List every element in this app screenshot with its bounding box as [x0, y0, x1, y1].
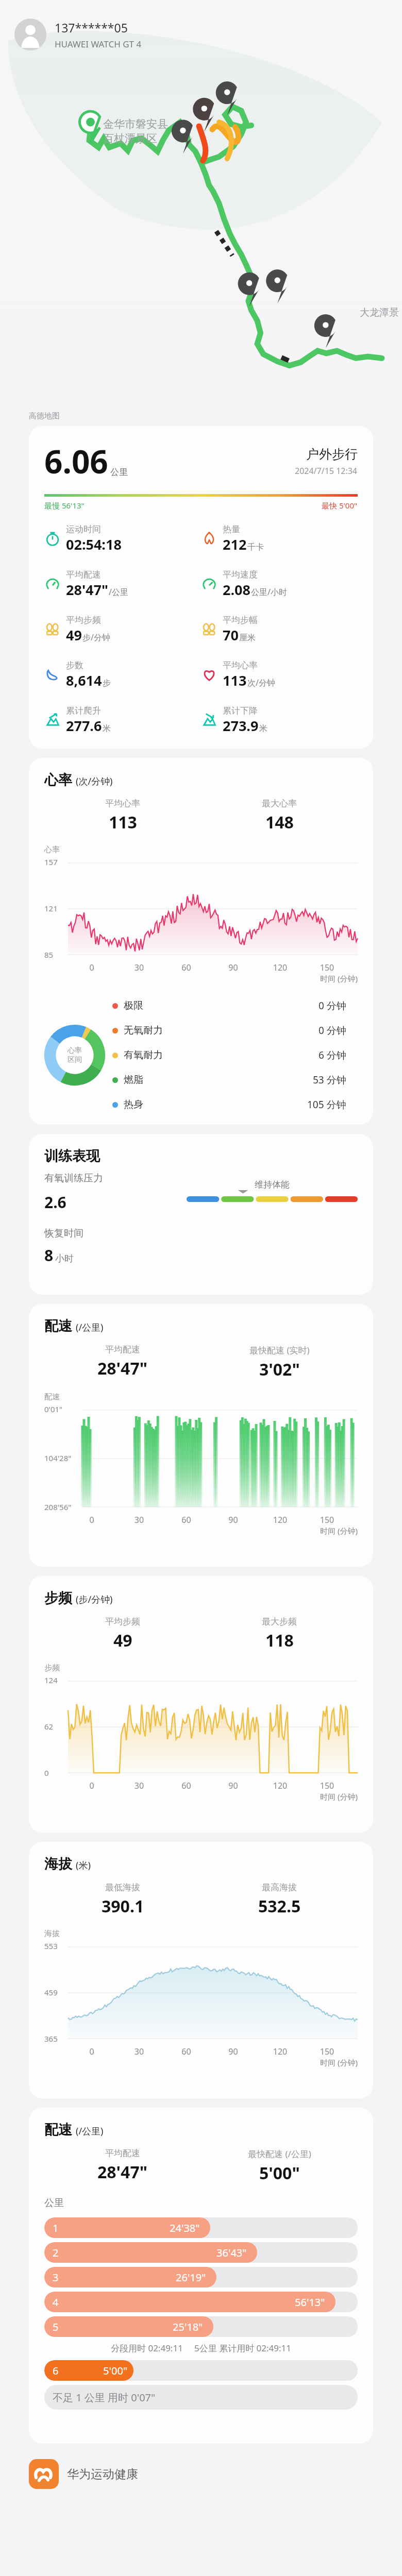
staticText: 厘米: [239, 633, 256, 643]
staticText: 60: [163, 1780, 210, 1791]
staticText: 平均配速: [66, 569, 101, 580]
staticText: 1: [53, 2221, 59, 2235]
staticText: 25'18": [173, 2320, 203, 2334]
staticText: 米: [103, 723, 111, 734]
staticText: 28'47": [66, 580, 108, 599]
staticText: (/公里): [76, 2125, 104, 2138]
staticText: 120: [257, 1780, 304, 1791]
button[interactable]: 4: [44, 2292, 358, 2312]
staticText: 平均心率: [223, 660, 258, 671]
staticText: 步: [103, 678, 111, 688]
staticText: 02:54:18: [66, 535, 122, 554]
staticText: 90: [210, 2046, 257, 2057]
staticText: 26'19": [176, 2270, 206, 2284]
staticText: 90: [210, 962, 257, 973]
staticText: 532.5: [258, 1895, 301, 1918]
staticText: 2024/7/15 12:34: [295, 465, 358, 477]
staticText: 0: [44, 1768, 49, 1778]
staticText: 5'00": [259, 2162, 300, 2184]
staticText: 燃脂: [124, 1074, 143, 1086]
staticText: 390.1: [102, 1895, 144, 1918]
staticText: 热身: [124, 1098, 143, 1111]
staticText: 0: [68, 1780, 115, 1791]
staticText: 最高海拔: [262, 1882, 297, 1893]
staticText: 5'00": [103, 2364, 127, 2378]
staticText: 配速: [44, 2121, 72, 2139]
staticText: 90: [210, 1780, 257, 1791]
staticText: /公里: [109, 586, 128, 598]
staticText: 平均配速: [105, 1344, 140, 1355]
staticText: 0 分钟: [319, 999, 346, 1012]
staticText: 113: [223, 671, 247, 690]
staticText: 70: [223, 625, 239, 645]
staticText: 步频: [44, 1589, 72, 1607]
staticText: 最快配速 (实时): [249, 1344, 310, 1356]
staticText: 60: [163, 2046, 210, 2057]
staticText: 心率: [44, 845, 60, 855]
staticText: 150: [304, 2046, 350, 2057]
staticText: 时间 (分钟): [320, 2057, 358, 2067]
staticText: 配速: [44, 1392, 60, 1402]
staticText: 最大心率: [262, 798, 297, 809]
staticText: 553: [44, 1941, 58, 1951]
staticText: 121: [44, 903, 58, 913]
staticText: 6: [53, 2364, 59, 2378]
staticText: 金华市磐安县 百杖潭景区: [103, 117, 168, 145]
staticText: 时间 (分钟): [320, 1526, 358, 1536]
staticText: 105 分钟: [307, 1098, 346, 1111]
button[interactable]: 华为运动健康: [29, 2459, 138, 2489]
staticText: 85: [44, 950, 54, 960]
button[interactable]: 3: [44, 2267, 358, 2287]
staticText: 平均步频: [105, 1616, 140, 1627]
staticText: 大龙潭景: [360, 307, 399, 319]
staticText: 千卡: [247, 542, 264, 552]
staticText: 高德地图: [29, 411, 60, 421]
staticText: 最大步频: [262, 1616, 297, 1627]
staticText: 24'38": [170, 2221, 200, 2235]
staticText: 海拔: [44, 1929, 60, 1939]
staticText: 118: [265, 1629, 294, 1652]
staticText: 配速: [44, 1317, 72, 1335]
staticText: 36'43": [216, 2246, 247, 2260]
staticText: 累计爬升: [66, 705, 101, 716]
staticText: 不足 1 公里 用时 0'07": [53, 2391, 156, 2404]
button[interactable]: 1: [44, 2217, 358, 2238]
staticText: (米): [76, 1859, 91, 1872]
button[interactable]: 6: [44, 2360, 358, 2381]
staticText: 277.6: [66, 716, 102, 735]
staticText: 训练表现: [44, 1147, 100, 1165]
staticText: 365: [44, 2033, 58, 2044]
staticText: (步/分钟): [76, 1593, 113, 1606]
staticText: 53 分钟: [313, 1073, 346, 1087]
button[interactable]: 2: [44, 2242, 358, 2263]
staticText: 137******05: [55, 20, 128, 36]
staticText: HUAWEI WATCH GT 4: [55, 38, 142, 50]
staticText: 2: [53, 2246, 59, 2260]
staticText: 6 分钟: [319, 1048, 346, 1062]
staticText: 区间: [68, 1055, 82, 1064]
staticText: 0'01": [44, 1404, 63, 1414]
staticText: 有氧耐力: [124, 1049, 163, 1061]
staticText: 30: [115, 962, 163, 973]
staticText: 公里/小时: [251, 586, 287, 598]
staticText: 6.06: [44, 439, 108, 483]
staticText: 运动时间: [66, 524, 101, 535]
staticText: 热量: [223, 524, 240, 535]
staticText: 212: [223, 535, 247, 554]
staticText: 3: [53, 2270, 59, 2284]
staticText: 120: [257, 2046, 304, 2057]
staticText: 0: [68, 1514, 115, 1526]
staticText: 60: [163, 1514, 210, 1526]
staticText: 维持体能: [255, 1179, 290, 1190]
staticText: 次/分钟: [247, 677, 275, 688]
staticText: 小时: [55, 1253, 74, 1265]
staticText: 极限: [124, 999, 143, 1012]
staticText: 150: [304, 1780, 350, 1791]
staticText: 273.9: [223, 716, 259, 735]
staticText: 2.6: [44, 1192, 66, 1213]
staticText: 平均步频: [66, 615, 101, 625]
staticText: 150: [304, 1514, 350, 1526]
button[interactable]: 5: [44, 2316, 358, 2337]
staticText: 心率: [68, 1046, 82, 1055]
staticText: 2.08: [223, 580, 250, 599]
